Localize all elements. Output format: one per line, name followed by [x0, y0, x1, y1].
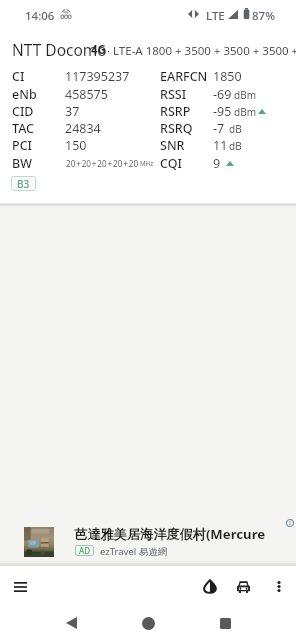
staticText: 117395237: [65, 68, 130, 85]
staticText: 458575: [65, 86, 108, 103]
staticText: ezTravel 易遊網: [100, 545, 168, 558]
staticText: -69: [213, 86, 232, 103]
button[interactable]: Contrast: [193, 570, 226, 603]
staticText: SNR: [160, 137, 185, 154]
staticText: NTT Docomo: [12, 39, 107, 60]
staticText: 24834: [65, 120, 101, 137]
staticText: LTE: [206, 8, 225, 24]
staticText: B3: [17, 177, 30, 191]
button[interactable]: Ad information: [286, 519, 294, 527]
staticText: MHz: [140, 159, 154, 167]
staticText: TAC: [12, 120, 35, 137]
staticText: 150: [65, 137, 87, 154]
staticText: RSRP: [160, 103, 191, 120]
button[interactable]: 芭達雅美居海洋度假村(Mercure: [0, 516, 296, 566]
staticText: 37: [65, 103, 80, 120]
staticText: PCI: [12, 137, 32, 154]
staticText: dB: [229, 139, 242, 153]
staticText: dB: [229, 122, 242, 136]
staticText: 4G: [91, 42, 106, 58]
staticText: dBm: [234, 88, 256, 102]
staticText: 11: [213, 137, 228, 154]
button[interactable]: Recent apps: [207, 605, 243, 641]
staticText: AD: [79, 545, 91, 556]
staticText: CID: [12, 103, 34, 120]
staticText: BW: [12, 155, 32, 172]
button[interactable]: More options: [262, 570, 295, 603]
button[interactable]: B3: [11, 176, 36, 191]
staticText: -7: [213, 120, 225, 137]
button[interactable]: Back: [53, 605, 89, 641]
staticText: dBm: [234, 105, 256, 119]
staticText: 14:06: [25, 8, 55, 24]
staticText: · LTE-A 1800 + 3500 + 3500 + 3500 + 3500…: [107, 43, 296, 59]
staticText: EARFCN: [160, 68, 208, 85]
staticText: 芭達雅美居海洋度假村(Mercure: [74, 525, 296, 543]
staticText: CI: [12, 68, 25, 85]
staticText: 87%: [252, 8, 275, 24]
button[interactable]: Drive mode: [227, 570, 260, 603]
staticText: 9: [213, 155, 221, 172]
staticText: RSSI: [160, 86, 187, 103]
staticText: eNb: [12, 86, 37, 103]
button[interactable]: Home: [130, 605, 166, 641]
staticText: RSRQ: [160, 120, 193, 137]
staticText: 1850: [213, 68, 242, 85]
staticText: 20 + 20 + 20 + 20 + 20: [66, 158, 139, 169]
button[interactable]: Menu: [4, 570, 37, 603]
staticText: CQI: [160, 155, 182, 172]
staticText: -95: [213, 103, 232, 120]
